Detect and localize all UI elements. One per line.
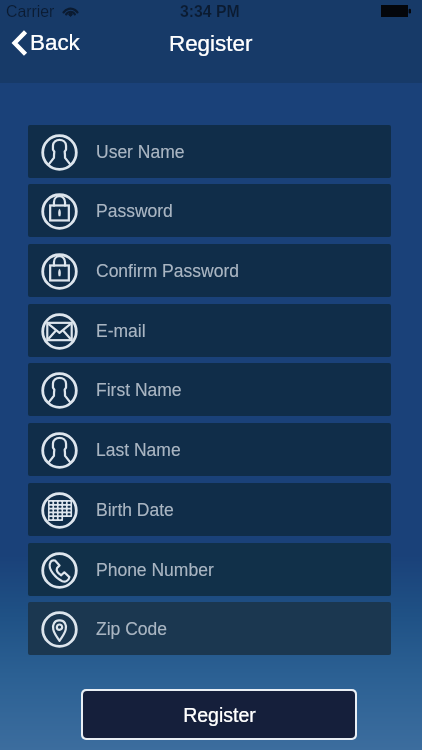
button[interactable]: Register	[83, 691, 355, 738]
button[interactable]: Last Name	[28, 423, 391, 476]
button[interactable]: Phone Number	[28, 543, 391, 596]
staticText: User Name	[96, 142, 185, 162]
staticText: Carrier	[6, 3, 55, 21]
staticText: Password	[96, 201, 173, 221]
staticText: Confirm Password	[96, 261, 239, 281]
button[interactable]: E-mail	[28, 304, 391, 357]
staticText: Phone Number	[96, 560, 214, 580]
staticText: Back	[30, 30, 80, 55]
staticText: Register	[183, 704, 256, 726]
staticText: E-mail	[96, 321, 146, 341]
button[interactable]: Zip Code	[28, 602, 391, 655]
staticText: Birth Date	[96, 500, 174, 520]
staticText: First Name	[96, 380, 182, 400]
staticText: Last Name	[96, 440, 181, 460]
button[interactable]: First Name	[28, 363, 391, 416]
button[interactable]: User Name	[28, 125, 391, 178]
button[interactable]: Birth Date	[28, 483, 391, 536]
staticText: 3:34 PM	[180, 3, 240, 21]
button[interactable]: Back	[6, 26, 94, 59]
button[interactable]: Confirm Password	[28, 244, 391, 297]
staticText: Register	[169, 31, 253, 56]
staticText: Zip Code	[96, 619, 168, 639]
button[interactable]: Password	[28, 184, 391, 237]
